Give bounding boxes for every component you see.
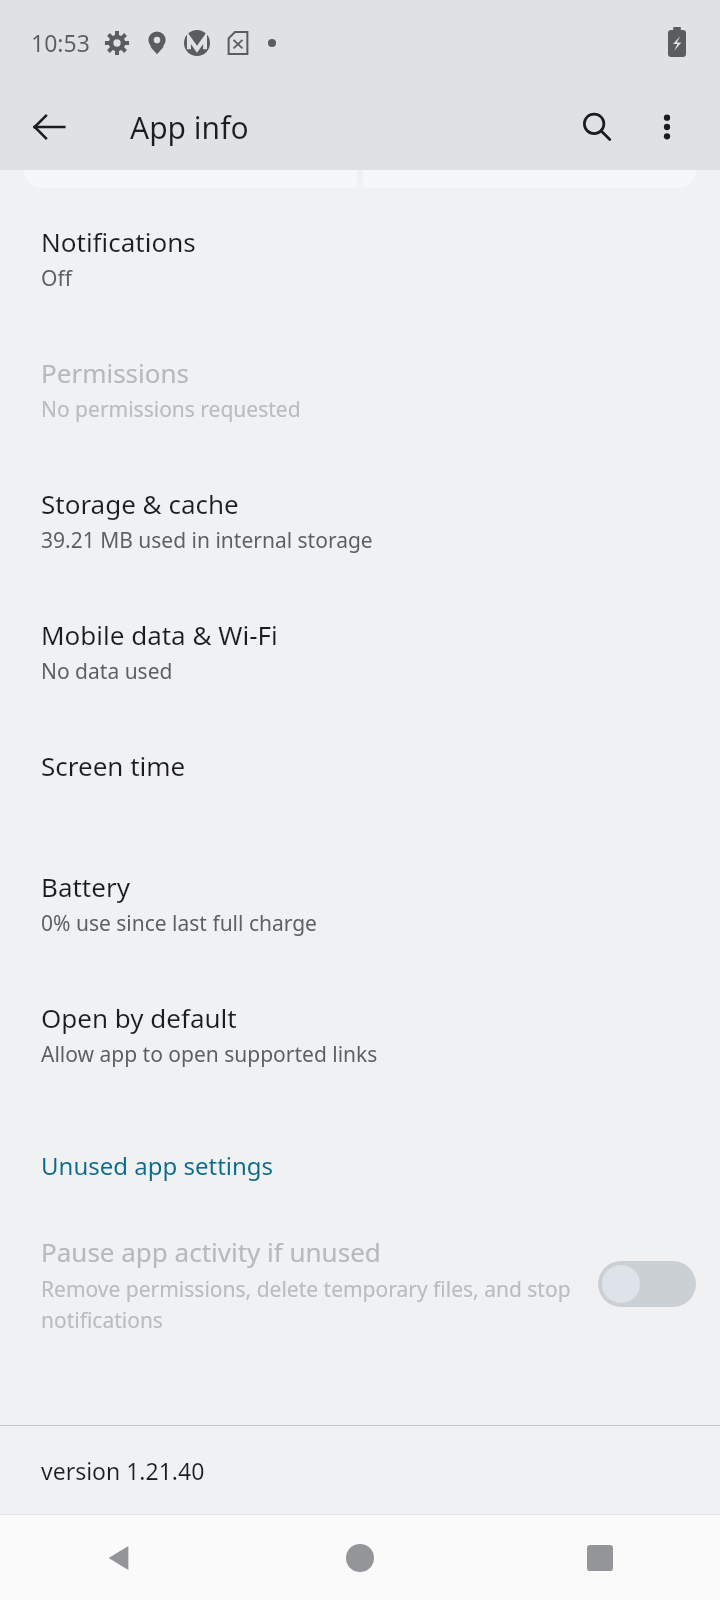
staticText: Allow app to open supported links xyxy=(41,1040,378,1069)
button[interactable]: Battery xyxy=(0,869,720,1000)
staticText: 39.21 MB used in internal storage xyxy=(41,526,373,555)
button[interactable]: Unused app settings xyxy=(41,1149,696,1182)
button[interactable]: Permissions xyxy=(0,355,720,486)
staticText: Unused app settings xyxy=(41,1149,274,1182)
button[interactable]: More options xyxy=(638,98,696,156)
button[interactable]: Mobile data & Wi-Fi xyxy=(0,617,720,748)
staticText: No data used xyxy=(41,657,173,686)
button[interactable]: Pause app activity if unused toggle xyxy=(598,1261,696,1307)
staticText: Off xyxy=(41,264,72,293)
staticText: Screen time xyxy=(41,748,186,783)
button[interactable]: Storage & cache xyxy=(0,486,720,617)
button[interactable]: Notifications xyxy=(0,224,720,355)
staticText: Storage & cache xyxy=(41,486,239,521)
staticText: 10:53 xyxy=(31,27,90,58)
staticText: Remove permissions, delete temporary fil… xyxy=(41,1275,588,1334)
button[interactable]: Open by default xyxy=(0,1000,720,1137)
button[interactable]: Recent apps xyxy=(480,1515,720,1600)
button[interactable]: Search xyxy=(566,96,628,158)
staticText: Open by default xyxy=(41,1000,237,1035)
staticText: Notifications xyxy=(41,224,196,259)
staticText: Pause app activity if unused xyxy=(41,1234,381,1269)
button[interactable]: Back xyxy=(0,1515,240,1600)
staticText: Permissions xyxy=(41,355,190,390)
staticText: 0% use since last full charge xyxy=(41,909,317,938)
button[interactable]: Screen time xyxy=(0,748,720,869)
staticText: Battery xyxy=(41,869,130,904)
staticText: App info xyxy=(130,107,249,148)
staticText: version 1.21.40 xyxy=(41,1455,205,1486)
button[interactable]: Pause app activity if unused xyxy=(41,1234,696,1334)
button[interactable]: Back xyxy=(18,96,80,158)
staticText: Mobile data & Wi-Fi xyxy=(41,617,278,652)
staticText: No permissions requested xyxy=(41,395,301,424)
button[interactable]: Home xyxy=(240,1515,480,1600)
